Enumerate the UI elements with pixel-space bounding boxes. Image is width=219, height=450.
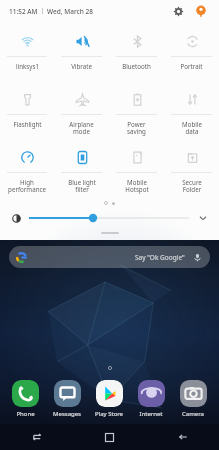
button[interactable]: Settings: [169, 2, 187, 20]
button[interactable]: Internet: [130, 380, 172, 418]
button[interactable]: Say "Ok Google": [9, 246, 210, 268]
button[interactable]: Brightness: [8, 210, 24, 226]
button[interactable]: Recent apps: [0, 424, 73, 450]
staticText: Mobile data: [182, 120, 202, 136]
staticText: Messages: [53, 410, 81, 418]
button[interactable]: Portrait: [164, 25, 219, 83]
button[interactable]: Mobile Hotspot: [109, 141, 164, 199]
staticText: Internet: [139, 410, 163, 418]
staticText: Flashlight: [13, 120, 42, 128]
staticText: Portrait: [180, 62, 203, 70]
staticText: Say "Ok Google": [135, 253, 185, 262]
button[interactable]: High performance: [0, 141, 54, 199]
staticText: Airplane mode: [69, 120, 94, 136]
staticText: Play Store: [95, 410, 123, 418]
button[interactable]: Expand brightness settings: [195, 210, 211, 226]
staticText: Power saving: [127, 120, 146, 136]
button[interactable]: Home: [73, 424, 146, 450]
staticText: Camera: [182, 410, 204, 418]
button[interactable]: Play Store: [88, 380, 130, 418]
button[interactable]: Power saving: [109, 83, 164, 141]
button[interactable]: Camera: [172, 380, 214, 418]
button[interactable]: Vibrate: [54, 25, 109, 83]
staticText: Phone: [16, 410, 35, 418]
button[interactable]: Blue light filter: [54, 141, 109, 199]
button[interactable]: Mobile data: [164, 83, 219, 141]
button[interactable]: Collapse panel: [101, 232, 119, 234]
staticText: Wed, March 28: [47, 7, 93, 16]
staticText: Vibrate: [71, 62, 92, 70]
button[interactable]: User profile: [192, 2, 210, 20]
button[interactable]: Bluetooth: [109, 25, 164, 83]
staticText: linksys1: [16, 62, 39, 70]
staticText: Blue light filter: [68, 178, 96, 194]
staticText: High performance: [8, 178, 46, 194]
button[interactable]: Flashlight: [0, 83, 54, 141]
staticText: 11:52 AM: [9, 7, 38, 16]
staticText: Secure Folder: [182, 178, 202, 194]
staticText: Mobile Hotspot: [125, 178, 149, 194]
button[interactable]: Messages: [46, 380, 88, 418]
staticText: Bluetooth: [122, 62, 151, 70]
other: Voice search: [192, 252, 203, 263]
button[interactable]: Phone: [5, 380, 46, 418]
button[interactable]: Back: [146, 424, 219, 450]
button[interactable]: Secure Folder: [164, 141, 219, 199]
button[interactable]: linksys1: [0, 25, 54, 83]
button[interactable]: Airplane mode: [54, 83, 109, 141]
